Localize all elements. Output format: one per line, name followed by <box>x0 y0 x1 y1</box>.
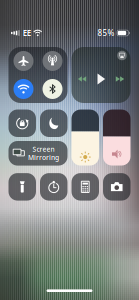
button[interactable]: Camera <box>103 173 130 201</box>
button[interactable]: Flashlight <box>8 173 36 201</box>
button[interactable]: Do Not Disturb <box>40 109 67 137</box>
button[interactable]: Volume <box>103 109 130 165</box>
button[interactable]: Wi-Fi <box>13 79 33 99</box>
button[interactable]: Next Track <box>114 73 125 84</box>
button[interactable]: Screen Mirroring <box>8 141 67 166</box>
button[interactable]: Rotation Lock <box>8 109 36 137</box>
staticText: EE <box>23 28 31 38</box>
button[interactable]: Play <box>94 72 107 85</box>
staticText: Screen <box>32 145 54 154</box>
button[interactable]: Cellular Data <box>42 51 62 71</box>
button[interactable]: Timer <box>40 173 67 201</box>
staticText: Mirroring <box>28 153 59 162</box>
button[interactable]: AirPlay <box>115 49 128 62</box>
button[interactable]: Brightness <box>71 109 99 165</box>
button[interactable]: Calculator <box>71 173 99 201</box>
button[interactable]: Bluetooth <box>42 79 62 99</box>
button[interactable]: Airplane Mode <box>13 51 33 71</box>
button[interactable]: Previous Track <box>76 73 87 84</box>
staticText: 85% <box>97 28 114 38</box>
